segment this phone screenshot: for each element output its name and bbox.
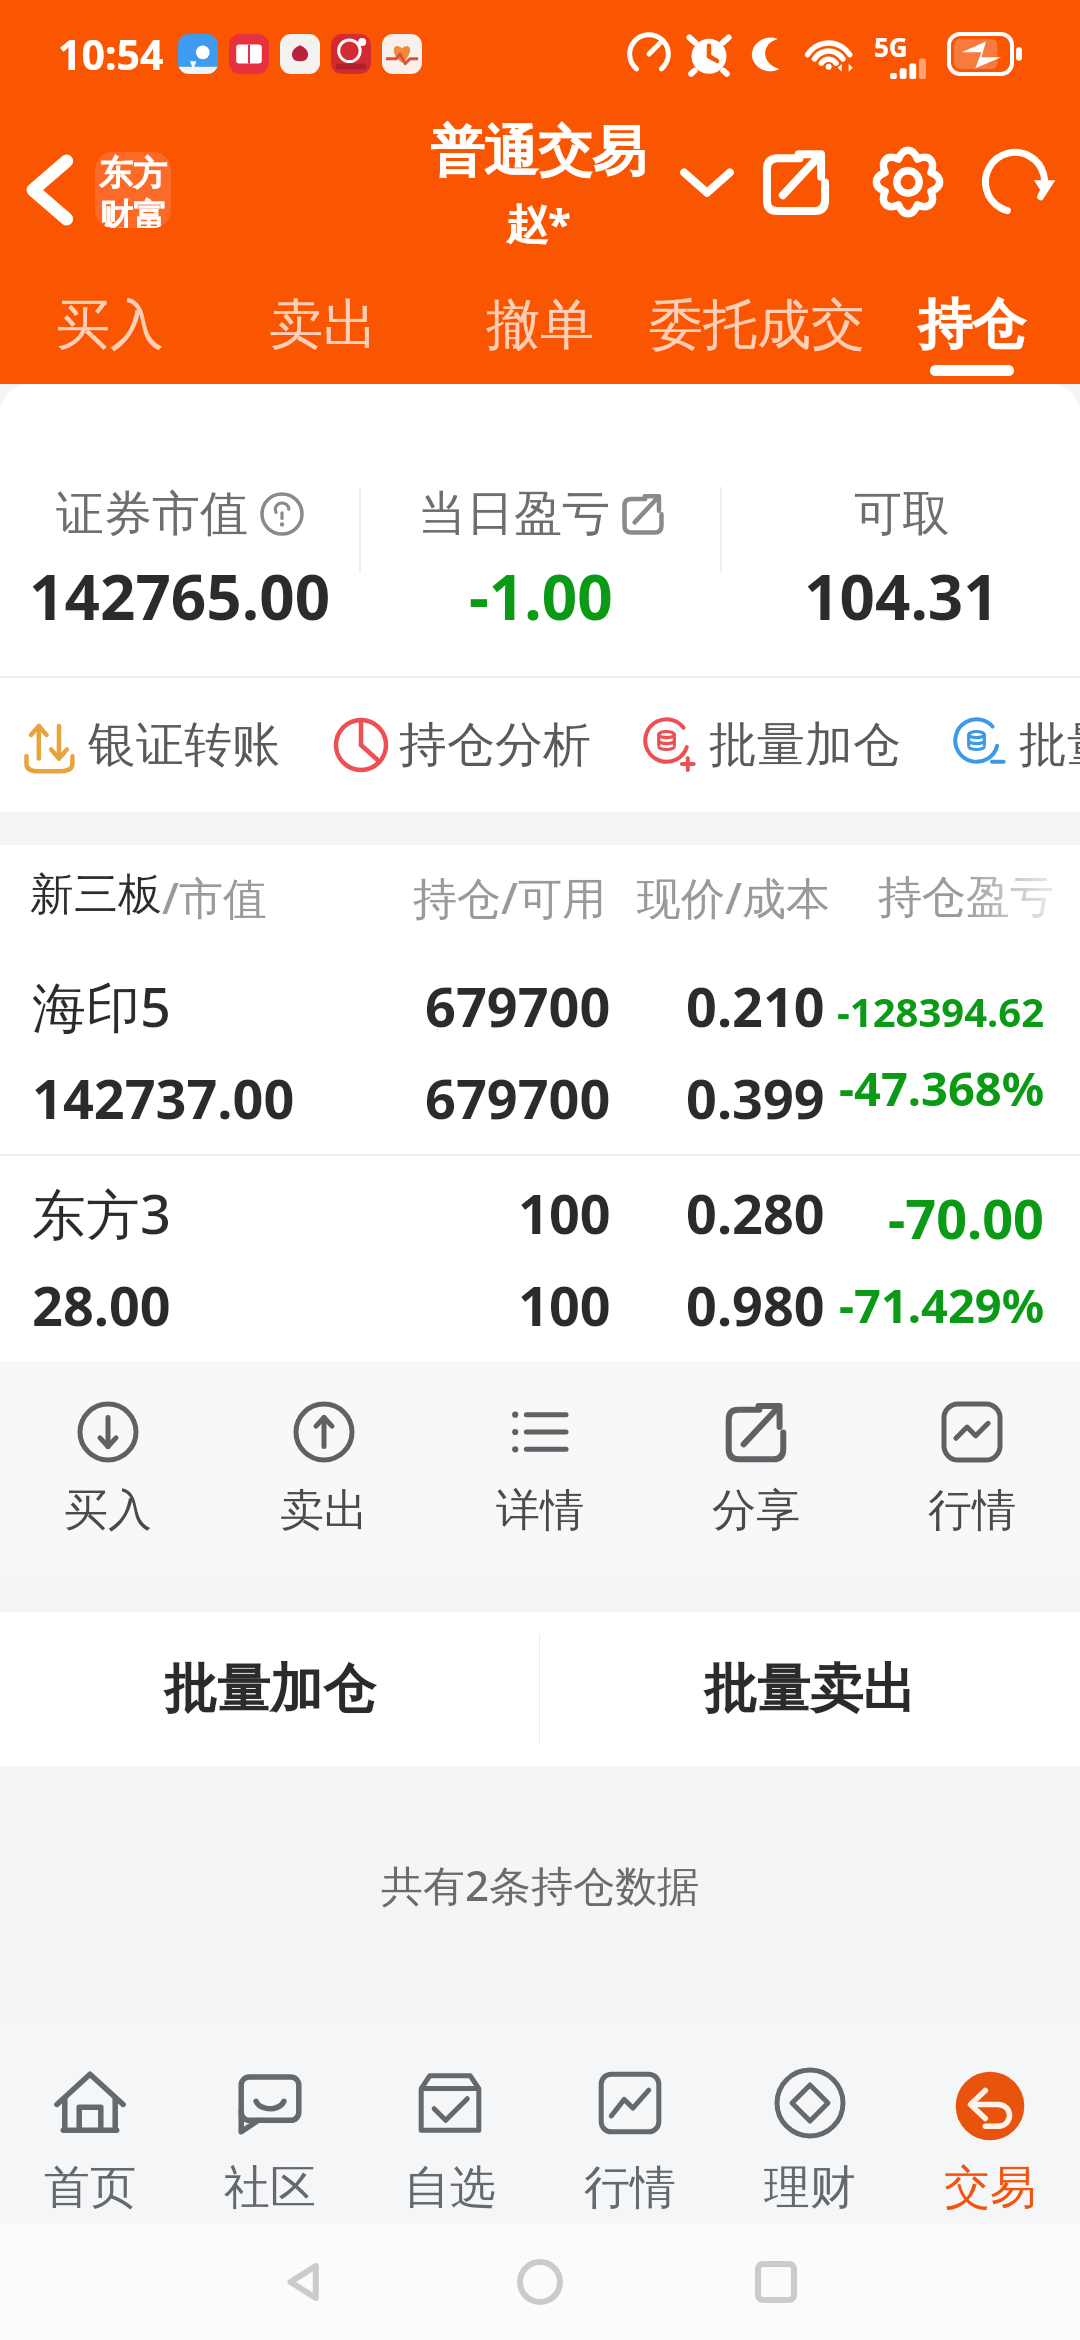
button[interactable]: Back: [6, 147, 92, 233]
staticText: 批量加仓: [709, 715, 901, 775]
button[interactable]: 撤单: [470, 270, 610, 384]
staticText: 共有2条持仓数据: [381, 1856, 700, 1913]
staticText: 持仓/可用: [413, 867, 606, 927]
button[interactable]: 社区: [180, 2024, 360, 2224]
staticText: 理财: [764, 2159, 856, 2217]
staticText: 批量加仓: [164, 1656, 376, 1723]
button[interactable]: 当日盈亏: [361, 384, 720, 676]
staticText: 委托成交: [649, 291, 865, 359]
staticText: 5G: [874, 29, 908, 64]
button[interactable]: 首页: [0, 2024, 180, 2224]
button[interactable]: Settings: [864, 138, 952, 226]
button[interactable]: 持仓分析: [333, 715, 591, 775]
staticText: 100: [518, 1176, 611, 1250]
button[interactable]: 批量加仓: [643, 715, 901, 775]
staticText: /市值: [162, 867, 267, 927]
staticText: 行情: [928, 1483, 1016, 1538]
staticText: 海印5: [32, 969, 171, 1043]
staticText: 批量卖出: [1019, 715, 1080, 775]
staticText: 0.210: [686, 969, 825, 1043]
button[interactable]: Back: [261, 2239, 347, 2325]
staticText: 现价/成本: [637, 867, 830, 927]
staticText: 0.280: [686, 1176, 825, 1250]
button[interactable]: 自选: [360, 2024, 540, 2224]
button[interactable]: 证券市值: [0, 384, 359, 676]
button[interactable]: 买入: [40, 270, 180, 384]
button[interactable]: 持仓: [902, 270, 1042, 384]
button[interactable]: 理财: [720, 2024, 900, 2224]
button[interactable]: 普通交易: [430, 118, 646, 251]
button[interactable]: Recents: [733, 2239, 819, 2325]
staticText: 10:54: [58, 26, 164, 82]
button[interactable]: 交易: [900, 2024, 1080, 2224]
button[interactable]: 海印5: [0, 949, 1080, 1154]
staticText: 100: [518, 1268, 611, 1342]
button[interactable]: 详情: [432, 1361, 648, 1577]
staticText: 持仓盈亏: [878, 870, 1054, 925]
staticText: 卖出: [269, 291, 377, 359]
button[interactable]: 卖出: [216, 1361, 432, 1577]
staticText: 28.00: [32, 1268, 171, 1342]
staticText: 东方3: [32, 1176, 171, 1250]
staticText: -71.429%: [839, 1273, 1045, 1337]
staticText: 分享: [712, 1483, 800, 1538]
staticText: 当日盈亏: [418, 484, 610, 544]
staticText: -47.368%: [839, 1056, 1045, 1120]
staticText: 可取: [854, 484, 950, 544]
button[interactable]: Home: [497, 2239, 583, 2325]
button[interactable]: 行情: [540, 2024, 720, 2224]
staticText: 社区: [224, 2159, 316, 2217]
staticText: 首页: [44, 2159, 136, 2217]
button[interactable]: 批量加仓: [0, 1612, 539, 1766]
staticText: 财富: [99, 195, 167, 228]
button[interactable]: 行情: [864, 1361, 1080, 1577]
staticText: 679700: [425, 1061, 611, 1135]
button[interactable]: 委托成交: [637, 270, 877, 384]
button[interactable]: 东方: [95, 152, 171, 228]
staticText: -70.00: [888, 1181, 1045, 1255]
staticText: 交易: [944, 2159, 1036, 2217]
staticText: 普通交易: [430, 118, 646, 186]
staticText: 0.399: [686, 1061, 825, 1135]
staticText: 142737.00: [32, 1061, 295, 1135]
button[interactable]: 东方3: [0, 1156, 1080, 1361]
staticText: 自选: [404, 2159, 496, 2217]
staticText: 买入: [56, 291, 164, 359]
staticText: 东方: [99, 152, 167, 195]
button[interactable]: 批量卖出: [540, 1612, 1080, 1766]
staticText: 证券市值: [56, 484, 248, 544]
staticText: -1.00: [469, 554, 613, 638]
button[interactable]: Refresh: [974, 138, 1062, 226]
staticText: 104.31: [804, 554, 999, 638]
staticText: 卖出: [280, 1483, 368, 1538]
button[interactable]: 银证转账: [22, 715, 280, 775]
button[interactable]: 分享: [648, 1361, 864, 1577]
staticText: 持仓分析: [399, 715, 591, 775]
button[interactable]: Share: [752, 138, 840, 226]
staticText: 0.980: [686, 1268, 825, 1342]
staticText: 新三板: [30, 867, 162, 922]
staticText: 银证转账: [88, 715, 280, 775]
staticText: 持仓: [918, 291, 1026, 359]
button[interactable]: 批量卖出: [953, 715, 1080, 775]
staticText: 行情: [584, 2159, 676, 2217]
button[interactable]: 买入: [0, 1361, 216, 1577]
staticText: 详情: [496, 1483, 584, 1538]
button[interactable]: Expand: [668, 143, 746, 221]
staticText: 赵*: [506, 194, 571, 251]
staticText: 撤单: [486, 291, 594, 359]
staticText: 批量卖出: [704, 1656, 916, 1723]
button[interactable]: 可取: [722, 384, 1080, 676]
button[interactable]: 卖出: [253, 270, 393, 384]
staticText: 买入: [64, 1483, 152, 1538]
staticText: 142765.00: [29, 554, 331, 638]
staticText: -128394.62: [837, 984, 1045, 1038]
staticText: 679700: [425, 969, 611, 1043]
